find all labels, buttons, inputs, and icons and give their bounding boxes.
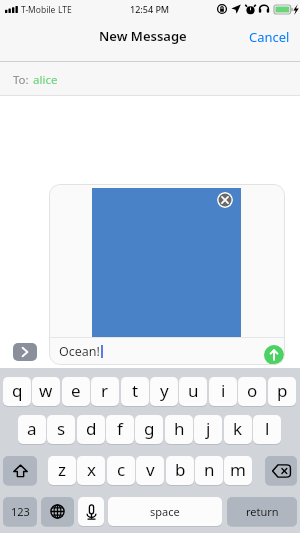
staticText: i	[221, 379, 226, 402]
button[interactable]: u	[179, 377, 207, 406]
staticText: m	[230, 458, 246, 481]
button[interactable]: Change keyboard	[41, 497, 74, 526]
button[interactable]: z	[48, 456, 76, 485]
button[interactable]: o	[238, 377, 266, 406]
button[interactable]: Remove attachment	[217, 192, 233, 208]
staticText: r	[101, 379, 109, 402]
staticText: k	[233, 417, 243, 440]
button[interactable]: w	[32, 377, 60, 406]
staticText: a	[27, 417, 37, 440]
button[interactable]: x	[77, 456, 105, 485]
staticText: d	[86, 417, 97, 440]
staticText: Cancel	[249, 28, 290, 46]
button[interactable]: l	[253, 415, 281, 444]
button[interactable]: v	[136, 456, 164, 485]
button[interactable]: s	[47, 415, 75, 444]
staticText: w	[39, 379, 53, 402]
staticText: g	[144, 417, 155, 440]
button[interactable]: j	[194, 415, 222, 444]
staticText: o	[247, 379, 258, 402]
staticText: 123	[11, 504, 30, 519]
button[interactable]: b	[166, 456, 194, 485]
staticText: return	[246, 504, 279, 519]
button[interactable]: k	[224, 415, 252, 444]
button[interactable]: d	[77, 415, 105, 444]
staticText: l	[265, 417, 270, 440]
staticText: x	[87, 458, 96, 481]
button[interactable]: p	[268, 377, 296, 406]
staticText: c	[117, 458, 126, 481]
button[interactable]: 123	[3, 497, 37, 526]
staticText: To:	[13, 72, 29, 88]
button[interactable]: m	[224, 456, 252, 485]
button[interactable]: Send	[264, 345, 284, 365]
staticText: Ocean!	[59, 343, 100, 360]
staticText: z	[58, 458, 66, 481]
button[interactable]: h	[165, 415, 193, 444]
button[interactable]: i	[209, 377, 237, 406]
staticText: p	[277, 379, 288, 402]
staticText: s	[57, 417, 66, 440]
staticText: b	[175, 458, 186, 481]
staticText: 12:54 PM	[130, 3, 170, 15]
staticText: h	[174, 417, 185, 440]
button[interactable]: a	[18, 415, 46, 444]
button[interactable]: r	[91, 377, 119, 406]
button[interactable]: Shift	[3, 456, 37, 485]
button[interactable]: return	[227, 497, 297, 526]
button[interactable]: Dictation	[78, 497, 104, 526]
staticText: u	[188, 379, 199, 402]
button[interactable]: y	[150, 377, 178, 406]
button[interactable]: space	[108, 497, 222, 526]
button[interactable]: Delete	[265, 456, 297, 485]
button[interactable]: Expand	[13, 343, 37, 361]
button[interactable]: g	[135, 415, 163, 444]
staticText: T-Mobile	[21, 4, 56, 16]
staticText: y	[160, 379, 169, 402]
button[interactable]: t	[121, 377, 149, 406]
button[interactable]: Cancel	[237, 21, 300, 53]
staticText: New Message	[99, 27, 187, 45]
button[interactable]: n	[195, 456, 223, 485]
staticText: v	[146, 458, 155, 481]
staticText: t	[132, 379, 139, 402]
staticText: space	[150, 504, 180, 519]
button[interactable]: f	[106, 415, 134, 444]
staticText: LTE	[58, 4, 72, 16]
staticText: j	[206, 417, 211, 440]
button[interactable]: c	[107, 456, 135, 485]
button[interactable]: q	[3, 377, 31, 406]
staticText: n	[204, 458, 215, 481]
button[interactable]: e	[62, 377, 90, 406]
staticText: q	[12, 379, 23, 402]
staticText: f	[117, 417, 123, 440]
staticText: e	[71, 379, 81, 402]
staticText: alice	[33, 72, 58, 88]
